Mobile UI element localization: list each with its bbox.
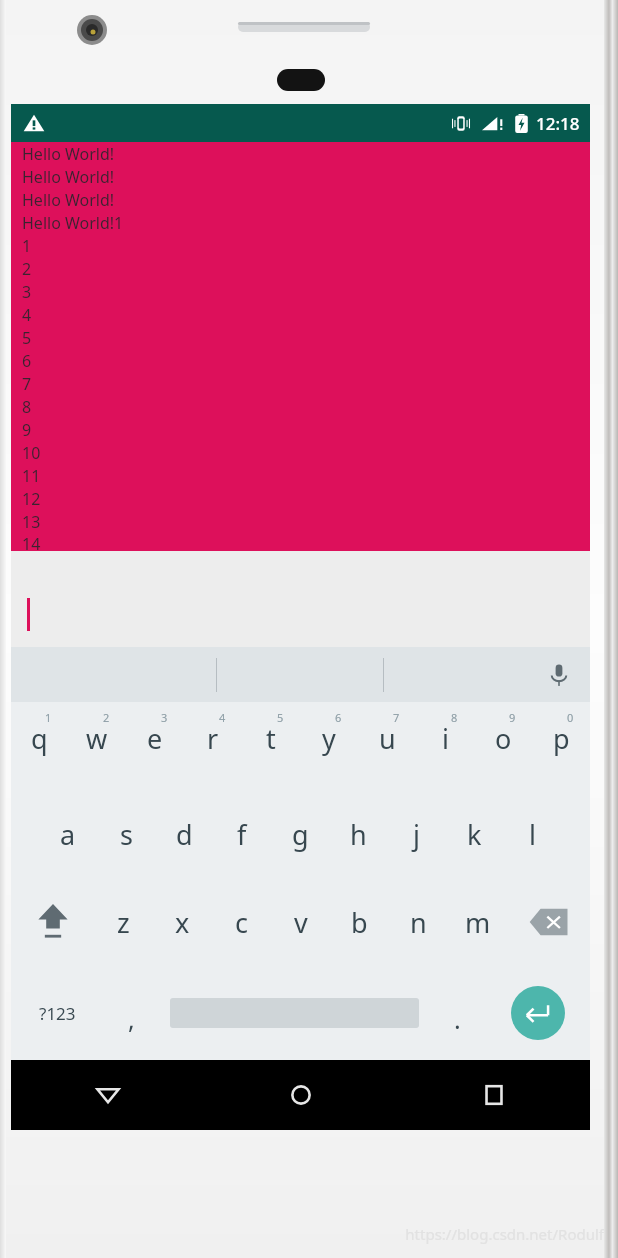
staticText: 2 [103,710,110,725]
button[interactable]: n [389,878,448,966]
button[interactable]: 6 [11,349,590,372]
button[interactable]: Recents [397,1060,590,1130]
button[interactable]: 9 [11,418,590,441]
staticText: 3 [22,281,32,303]
button[interactable]: 9 [474,702,532,790]
button[interactable]: b [330,878,389,966]
staticText: ?123 [39,1002,76,1025]
staticText: 6 [335,710,342,725]
button[interactable]: 5 [11,326,590,349]
button[interactable]: l [503,790,561,878]
button[interactable]: 4 [11,303,590,326]
button[interactable]: 7 [11,372,590,395]
button[interactable]: Back [11,1060,204,1130]
button[interactable]: j [387,790,445,878]
button[interactable] [11,551,590,647]
button[interactable]: Home [204,1060,397,1130]
staticText: a [60,816,76,853]
button[interactable]: 3 [126,702,184,790]
staticText: x [175,904,190,941]
button[interactable]: 8 [416,702,474,790]
staticText: 10 [22,442,41,464]
button[interactable]: Shift [11,878,94,966]
button[interactable]: s [97,790,155,878]
staticText: g [292,816,309,853]
button[interactable]: Hello World! [11,142,590,165]
staticText: 11 [22,465,41,487]
button[interactable]: g [271,790,329,878]
button[interactable]: 2 [68,702,126,790]
button[interactable]: 5 [242,702,300,790]
button[interactable]: f [213,790,271,878]
button[interactable]: 3 [11,280,590,303]
staticText: 5 [277,710,284,725]
staticText: r [207,720,219,757]
staticText: f [237,816,247,853]
button[interactable]: c [212,878,271,966]
button[interactable]: 11 [11,464,590,487]
staticText: t [266,720,276,757]
staticText: 9 [509,710,516,725]
staticText: 7 [22,373,32,395]
staticText: n [410,904,427,941]
staticText: 3 [161,710,168,725]
button[interactable]: ?123 [11,966,104,1060]
staticText: 0 [567,710,574,725]
button[interactable]: 8 [11,395,590,418]
staticText: Hello World!1 [22,212,124,234]
staticText: y [322,720,336,757]
button[interactable]: , [104,966,159,1060]
button[interactable]: z [94,878,153,966]
staticText: . [454,1002,461,1036]
button[interactable]: 7 [358,702,416,790]
staticText: 7 [393,710,400,725]
staticText: 5 [22,327,32,349]
staticText: s [120,816,133,853]
button[interactable]: 6 [300,702,358,790]
button[interactable]: 4 [184,702,242,790]
staticText: d [176,816,193,853]
button[interactable]: h [329,790,387,878]
button[interactable]: Hello World!1 [11,211,590,234]
button[interactable]: 2 [11,257,590,280]
staticText: 4 [219,710,226,725]
staticText: p [553,720,570,757]
button[interactable]: Hello World! [11,188,590,211]
staticText: h [350,816,367,853]
button[interactable]: k [445,790,503,878]
staticText: https://blog.csdn.net/Rodulf [405,1224,604,1244]
staticText: 14 [22,533,41,551]
staticText: 8 [451,710,458,725]
button[interactable]: Enter [485,966,590,1060]
button[interactable]: v [271,878,330,966]
staticText: 1 [45,710,52,725]
staticText: 9 [22,419,32,441]
staticText: m [465,904,491,941]
button[interactable]: 10 [11,441,590,464]
staticText: e [147,720,163,757]
button[interactable]: a [39,790,97,878]
staticText: 8 [22,396,32,418]
staticText: c [235,904,248,941]
staticText: 13 [22,511,41,533]
button[interactable]: 13 [11,510,590,533]
button[interactable]: . [430,966,485,1060]
staticText: z [117,904,130,941]
button[interactable]: Space [159,966,430,1060]
staticText: , [128,1002,135,1036]
staticText: 1 [22,235,32,257]
staticText: Hello World! [22,166,115,188]
button[interactable]: x [153,878,212,966]
button[interactable]: Voice input [542,658,576,692]
button[interactable]: 14 [11,533,590,551]
button[interactable]: d [155,790,213,878]
button[interactable]: 0 [532,702,590,790]
button[interactable]: Backspace [507,878,590,966]
button[interactable]: m [448,878,507,966]
button[interactable]: 1 [11,234,590,257]
staticText: Hello World! [22,143,115,165]
button[interactable]: 12 [11,487,590,510]
staticText: w [86,720,108,757]
button[interactable]: Hello World! [11,165,590,188]
button[interactable]: 1 [11,702,68,790]
